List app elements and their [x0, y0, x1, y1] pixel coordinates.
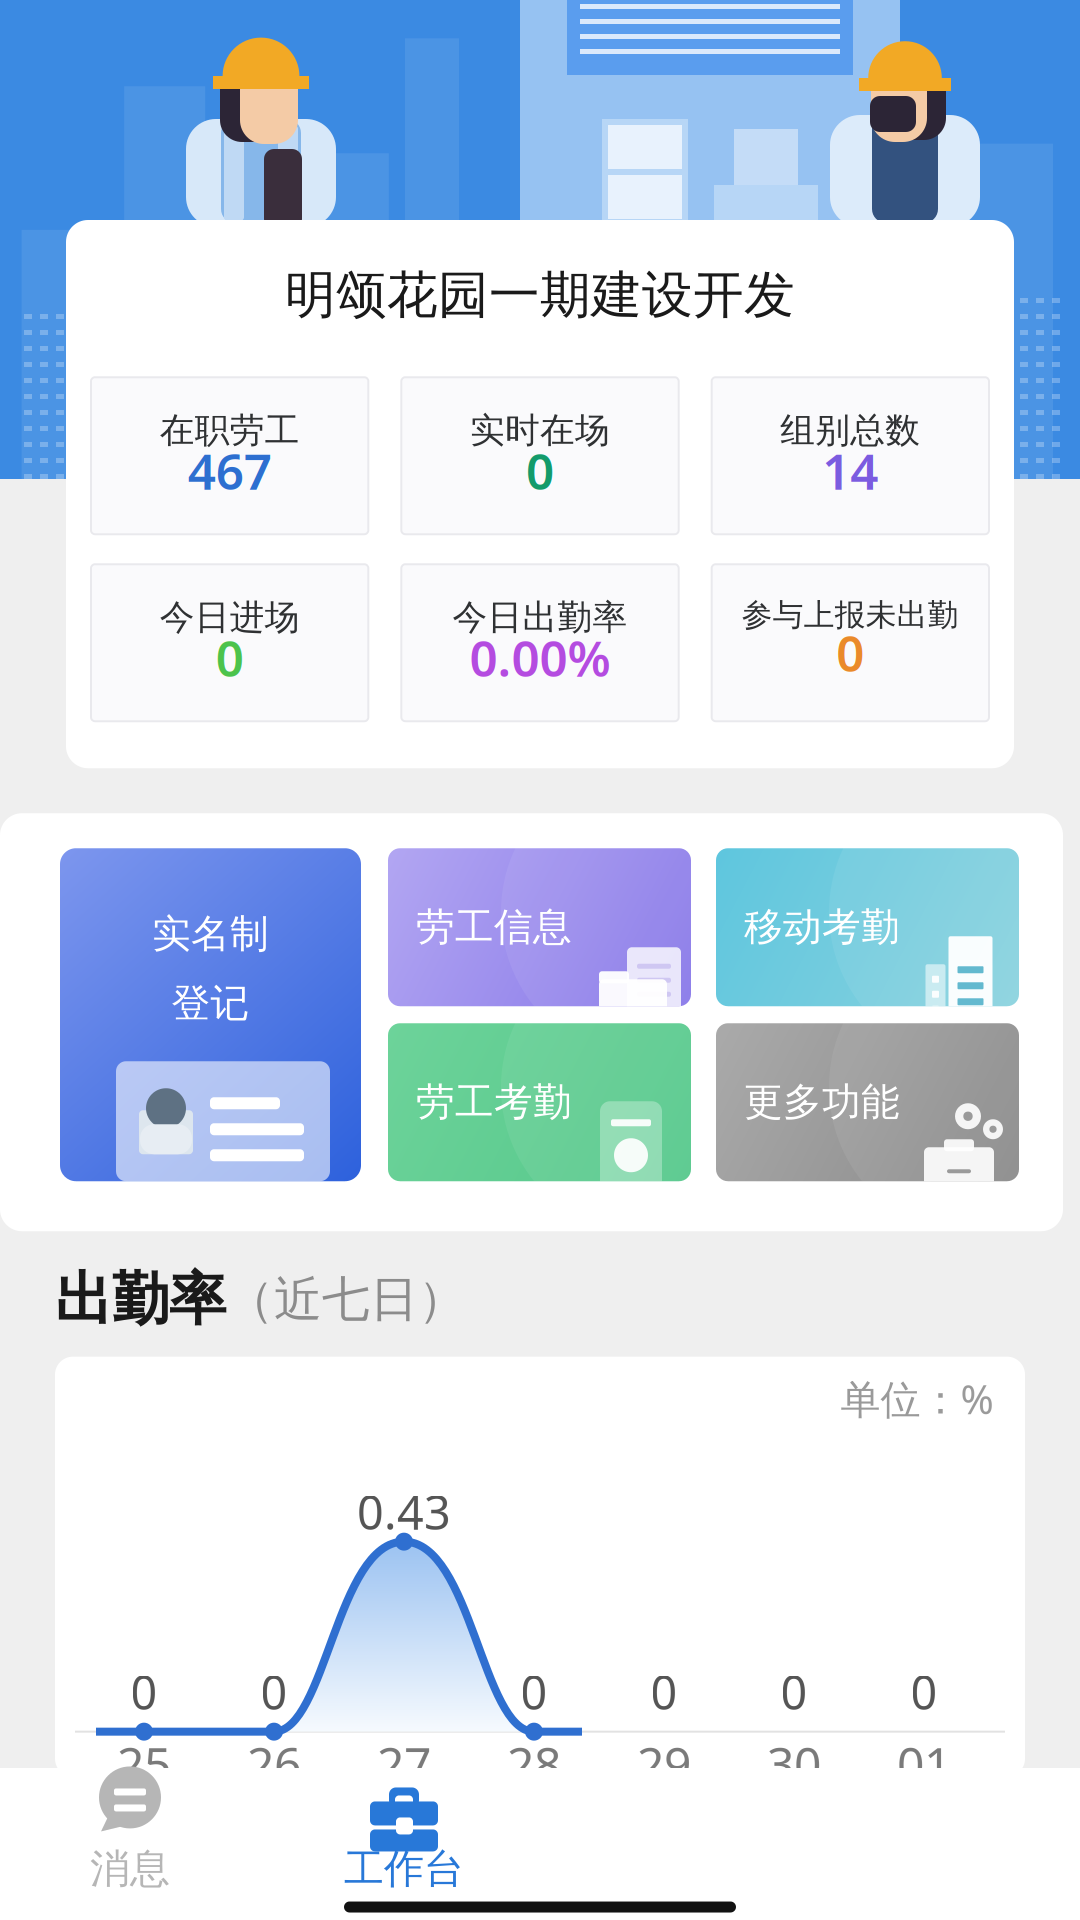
- staticText: 消息: [90, 1844, 170, 1893]
- staticText: 14: [822, 438, 878, 503]
- staticText: 28: [507, 1732, 561, 1795]
- button[interactable]: 实时在场: [401, 377, 679, 534]
- staticText: 单位：%: [840, 1372, 993, 1425]
- button[interactable]: 组别总数: [712, 377, 989, 534]
- button[interactable]: 移动考勤: [716, 848, 1019, 1006]
- staticText: 移动考勤: [744, 903, 900, 951]
- staticText: 0: [216, 625, 244, 690]
- staticText: 出勤率: [55, 1264, 226, 1335]
- staticText: 组别总数: [780, 409, 920, 452]
- staticText: 劳工信息: [416, 903, 572, 951]
- staticText: 0: [526, 438, 554, 503]
- staticText: 26: [247, 1732, 301, 1795]
- staticText: 0: [836, 620, 864, 685]
- staticText: 今日进场: [160, 596, 300, 639]
- staticText: 25: [117, 1732, 171, 1795]
- button[interactable]: 在职劳工: [91, 377, 368, 534]
- staticText: 0: [520, 1661, 547, 1723]
- button[interactable]: 今日进场: [91, 564, 368, 721]
- staticText: 工作台: [344, 1844, 464, 1893]
- staticText: （近七日）: [226, 1270, 466, 1329]
- button[interactable]: 劳工信息: [388, 848, 691, 1006]
- button[interactable]: 消息: [10, 1770, 250, 1890]
- staticText: 更多功能: [744, 1078, 900, 1126]
- staticText: 0: [910, 1661, 937, 1723]
- staticText: 29: [637, 1732, 691, 1795]
- staticText: 登记: [171, 980, 249, 1027]
- staticText: 30: [767, 1732, 821, 1795]
- staticText: 0: [780, 1661, 807, 1723]
- staticText: 在职劳工: [160, 409, 300, 452]
- staticText: 0: [260, 1661, 287, 1723]
- staticText: 劳工考勤: [416, 1078, 572, 1126]
- staticText: 0.00%: [469, 625, 610, 690]
- staticText: 实时在场: [470, 409, 610, 452]
- staticText: 27: [377, 1732, 431, 1795]
- button[interactable]: 劳工考勤: [388, 1023, 691, 1181]
- button[interactable]: 工作台: [284, 1770, 524, 1890]
- staticText: 0.43: [357, 1481, 451, 1543]
- staticText: 0: [650, 1661, 677, 1723]
- staticText: 467: [188, 438, 272, 503]
- staticText: 0: [130, 1661, 157, 1723]
- staticText: 今日出勤率: [452, 596, 627, 639]
- button[interactable]: 更多功能: [716, 1023, 1019, 1181]
- staticText: 参与上报未出勤: [742, 596, 959, 634]
- button[interactable]: 参与上报未出勤: [712, 564, 989, 721]
- staticText: 明颂花园一期建设开发: [285, 264, 795, 326]
- button[interactable]: 今日出勤率: [401, 564, 679, 721]
- button[interactable]: 实名制: [60, 848, 361, 1181]
- staticText: 01: [897, 1732, 951, 1795]
- staticText: 实名制: [152, 910, 269, 958]
